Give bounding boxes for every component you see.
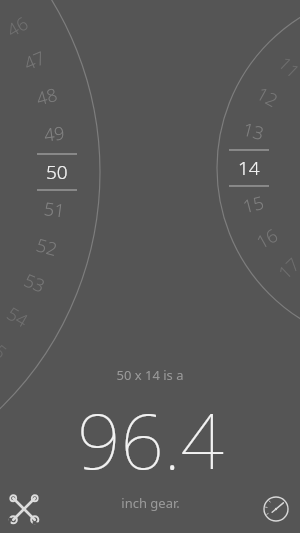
button[interactable]: Settings xyxy=(4,489,44,529)
staticText: 50 x 14 is a xyxy=(116,366,184,384)
staticText: inch gear. xyxy=(121,494,180,512)
button[interactable]: Speed calculator xyxy=(256,489,296,529)
staticText: 96.4 xyxy=(77,388,224,492)
